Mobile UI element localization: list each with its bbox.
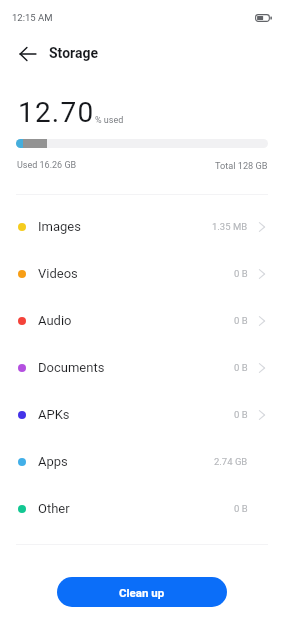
staticText: 0 B: [234, 409, 248, 420]
staticText: 12.70: [18, 96, 95, 129]
staticText: % used: [95, 115, 124, 126]
staticText: 12:15 AM: [12, 12, 53, 23]
staticText: Storage: [49, 45, 99, 61]
button[interactable]: Audio: [0, 297, 284, 344]
staticText: Audio: [38, 313, 72, 328]
button[interactable]: Documents: [0, 344, 284, 391]
button[interactable]: APKs: [0, 391, 284, 438]
staticText: 0 B: [234, 503, 248, 514]
staticText: Apps: [38, 454, 68, 469]
staticText: 0 B: [234, 362, 248, 373]
button[interactable]: Apps: [0, 438, 284, 485]
button[interactable]: Images: [0, 203, 284, 250]
staticText: 1.35 MB: [212, 221, 248, 232]
staticText: Videos: [38, 266, 78, 281]
staticText: 0 B: [234, 268, 248, 279]
button[interactable]: Back: [13, 39, 43, 69]
staticText: Used 16.26 GB: [17, 160, 77, 171]
staticText: APKs: [38, 407, 70, 422]
staticText: Other: [38, 501, 70, 516]
staticText: Total 128 GB: [215, 160, 268, 171]
button[interactable]: Clean up: [57, 577, 227, 607]
staticText: Clean up: [119, 586, 165, 599]
staticText: 0 B: [234, 315, 248, 326]
staticText: Images: [38, 219, 81, 234]
staticText: Documents: [38, 360, 105, 375]
staticText: 2.74 GB: [214, 456, 248, 467]
button[interactable]: Videos: [0, 250, 284, 297]
button[interactable]: Other: [0, 485, 284, 532]
